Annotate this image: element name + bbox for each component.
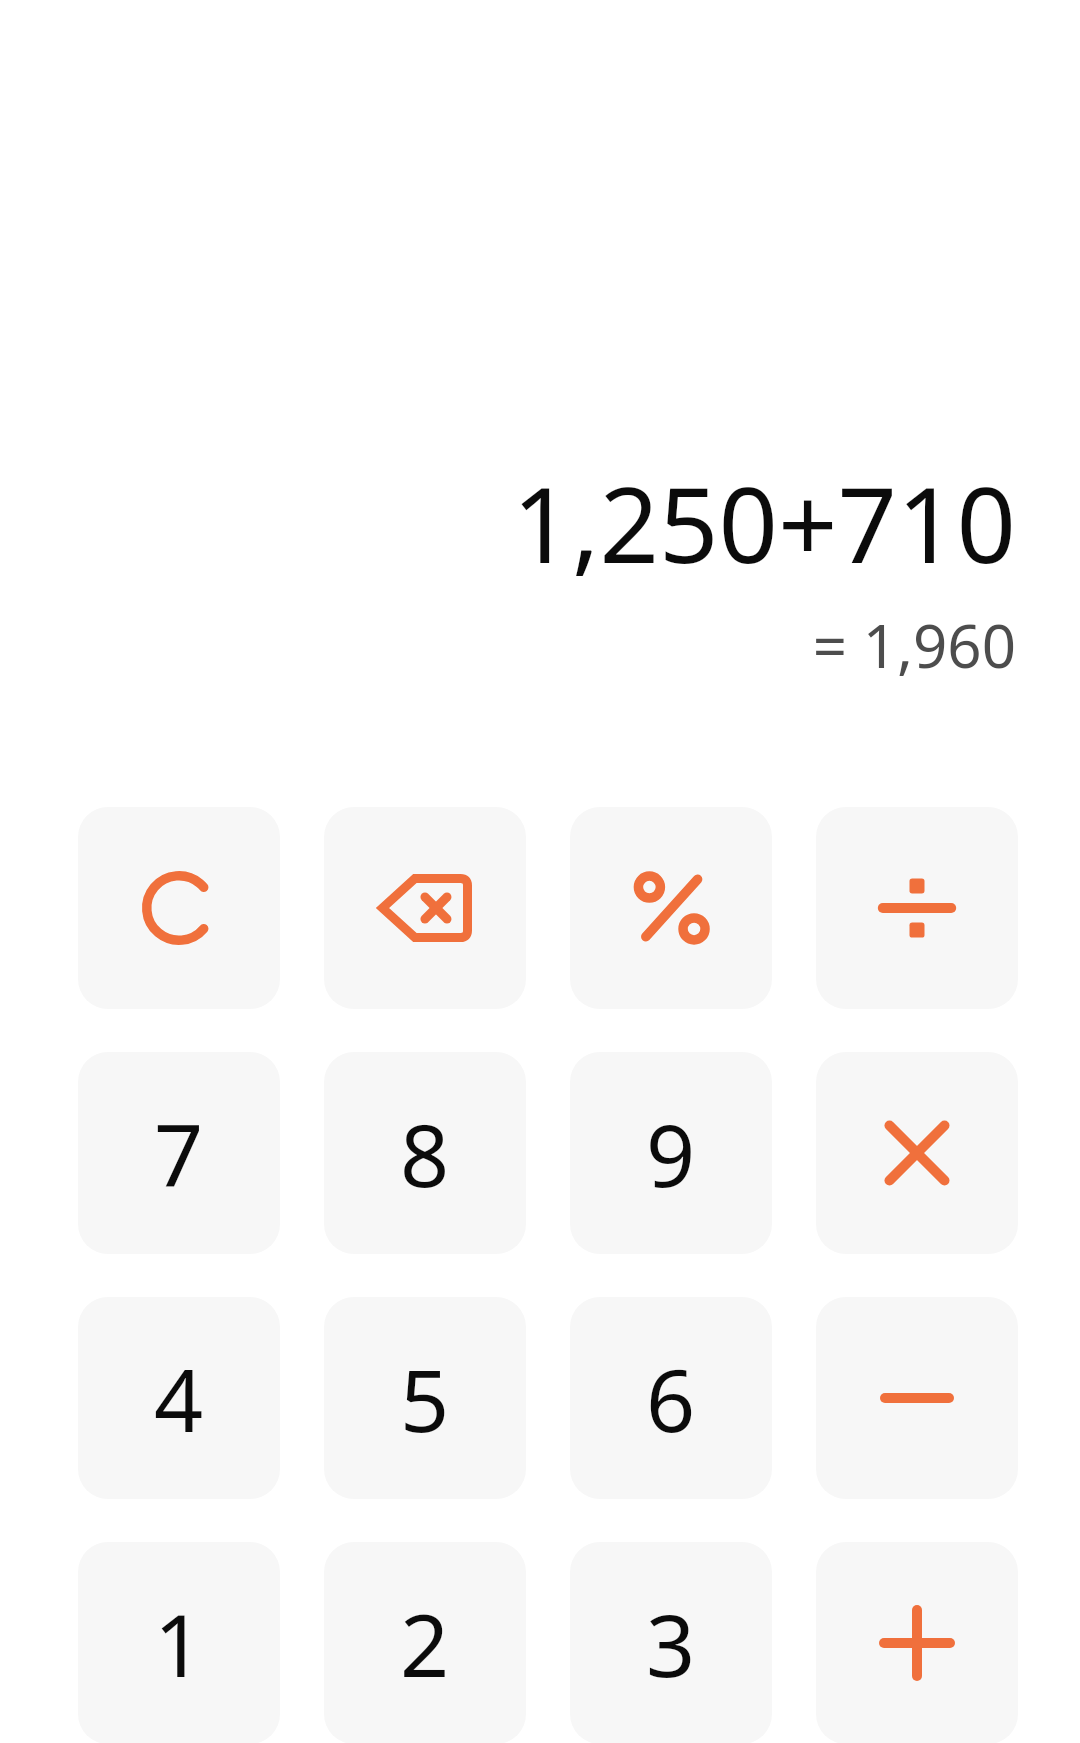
staticText: 6	[646, 1340, 696, 1457]
button[interactable]: 5	[324, 1297, 526, 1499]
button[interactable]: Percent	[570, 807, 772, 1009]
button[interactable]: Backspace	[324, 807, 526, 1009]
button[interactable]: Multiply	[816, 1052, 1018, 1254]
button[interactable]: Divide	[816, 807, 1018, 1009]
button[interactable]: 8	[324, 1052, 526, 1254]
button[interactable]: 4	[78, 1297, 280, 1499]
button[interactable]: 9	[570, 1052, 772, 1254]
button[interactable]: Minus	[816, 1297, 1018, 1499]
staticText: 7	[154, 1095, 204, 1212]
button[interactable]: 3	[570, 1542, 772, 1743]
button[interactable]: 1	[78, 1542, 280, 1743]
staticText: = 1,960	[0, 604, 1016, 686]
button[interactable]: Clear	[78, 807, 280, 1009]
button[interactable]: 2	[324, 1542, 526, 1743]
button[interactable]: Plus	[816, 1542, 1018, 1743]
staticText: 1,250+710	[0, 452, 1016, 594]
button[interactable]: 6	[570, 1297, 772, 1499]
staticText: 5	[400, 1340, 450, 1457]
staticText: 9	[646, 1095, 696, 1212]
staticText: 1	[154, 1585, 204, 1702]
staticText: 8	[400, 1095, 450, 1212]
button[interactable]: 7	[78, 1052, 280, 1254]
staticText: 3	[646, 1585, 696, 1702]
staticText: 4	[154, 1340, 204, 1457]
staticText: 2	[400, 1585, 450, 1702]
